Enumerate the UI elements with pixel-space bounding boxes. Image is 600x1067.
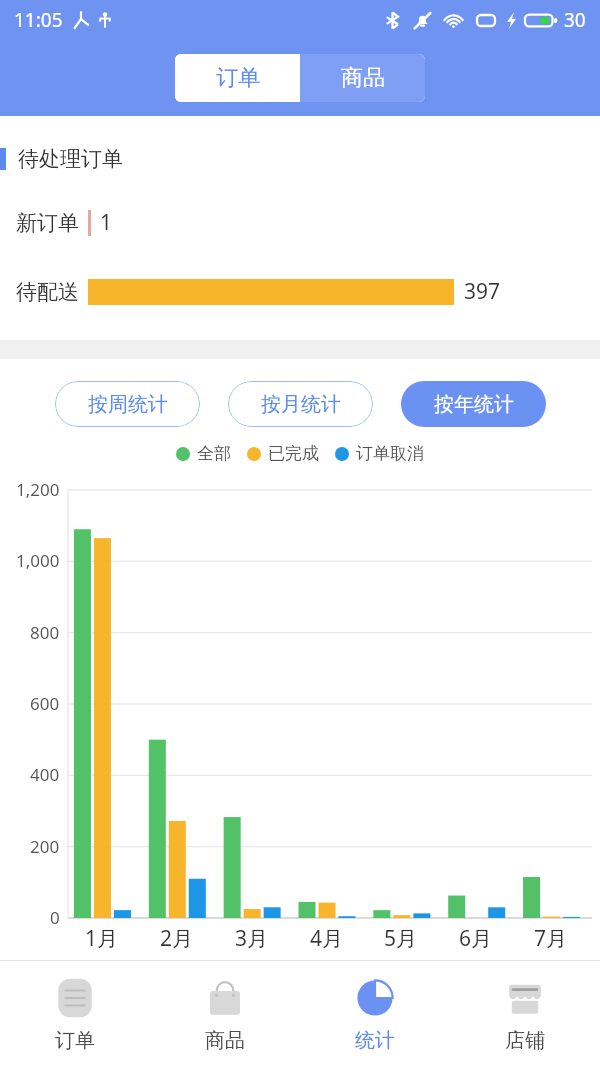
staticText: 3月 xyxy=(235,924,269,953)
staticText: 待配送 xyxy=(16,279,79,305)
staticText: 11:05 xyxy=(14,7,63,33)
staticText: 商品 xyxy=(341,64,385,92)
staticText: 1,000 xyxy=(16,549,60,572)
button[interactable]: 按年统计 xyxy=(401,381,546,427)
staticText: 397 xyxy=(464,277,501,306)
staticText: 2月 xyxy=(160,924,194,953)
staticText: 订单 xyxy=(55,1028,95,1053)
staticText: 7月 xyxy=(534,924,568,953)
staticText: 订单取消 xyxy=(356,443,424,464)
staticText: 30 xyxy=(564,7,586,33)
staticText: 待处理订单 xyxy=(18,146,123,172)
staticText: 新订单 xyxy=(16,210,79,236)
staticText: 6月 xyxy=(459,924,493,953)
staticText: 200 xyxy=(30,835,60,858)
button[interactable]: 店铺 xyxy=(450,961,600,1067)
staticText: 全部 xyxy=(197,443,231,464)
staticText: 1,200 xyxy=(16,478,60,501)
button[interactable]: 统计 xyxy=(300,961,450,1067)
staticText: 600 xyxy=(30,692,60,715)
button[interactable]: 新订单 xyxy=(16,208,600,237)
staticText: 统计 xyxy=(355,1028,395,1053)
staticText: 按周统计 xyxy=(88,392,168,417)
button[interactable]: 按月统计 xyxy=(228,381,373,427)
staticText: 400 xyxy=(30,763,60,786)
button[interactable]: 商品 xyxy=(150,961,300,1067)
button[interactable]: 订单 xyxy=(0,961,150,1067)
staticText: 店铺 xyxy=(505,1028,545,1053)
staticText: 订单 xyxy=(216,64,260,92)
staticText: 按月统计 xyxy=(261,392,341,417)
staticText: 5月 xyxy=(384,924,418,953)
staticText: 1月 xyxy=(85,924,119,953)
button[interactable]: 订单 xyxy=(175,54,300,102)
staticText: 1 xyxy=(100,208,113,237)
staticText: 已完成 xyxy=(268,443,319,464)
button[interactable]: 待配送 xyxy=(16,277,600,306)
staticText: 800 xyxy=(30,621,60,644)
staticText: 4月 xyxy=(310,924,344,953)
staticText: 商品 xyxy=(205,1028,245,1053)
button[interactable]: 按周统计 xyxy=(55,381,200,427)
button[interactable]: 商品 xyxy=(300,54,425,102)
staticText: 0 xyxy=(50,906,60,929)
staticText: 按年统计 xyxy=(434,392,514,417)
